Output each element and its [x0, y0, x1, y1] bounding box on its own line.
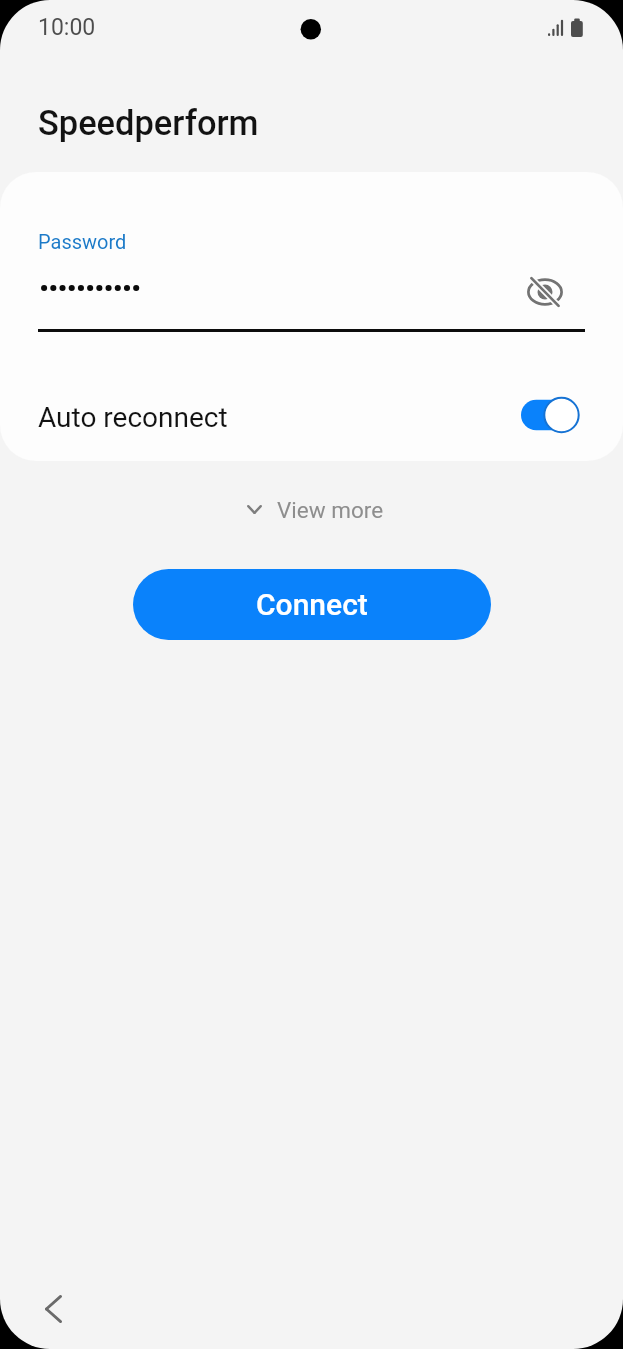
- staticText: Password: [38, 230, 127, 253]
- button[interactable]: Show password: [521, 268, 569, 316]
- button[interactable]: View more: [247, 497, 384, 523]
- staticText: Auto reconnect: [38, 401, 228, 434]
- button[interactable]: Back: [27, 1283, 79, 1335]
- staticText: Speedperform: [38, 103, 259, 143]
- staticText: View more: [277, 497, 384, 523]
- button[interactable]: Connect: [133, 569, 491, 640]
- button[interactable]: Auto reconnect toggle: [521, 395, 583, 435]
- staticText: 10:00: [38, 14, 96, 41]
- staticText: Connect: [256, 587, 368, 622]
